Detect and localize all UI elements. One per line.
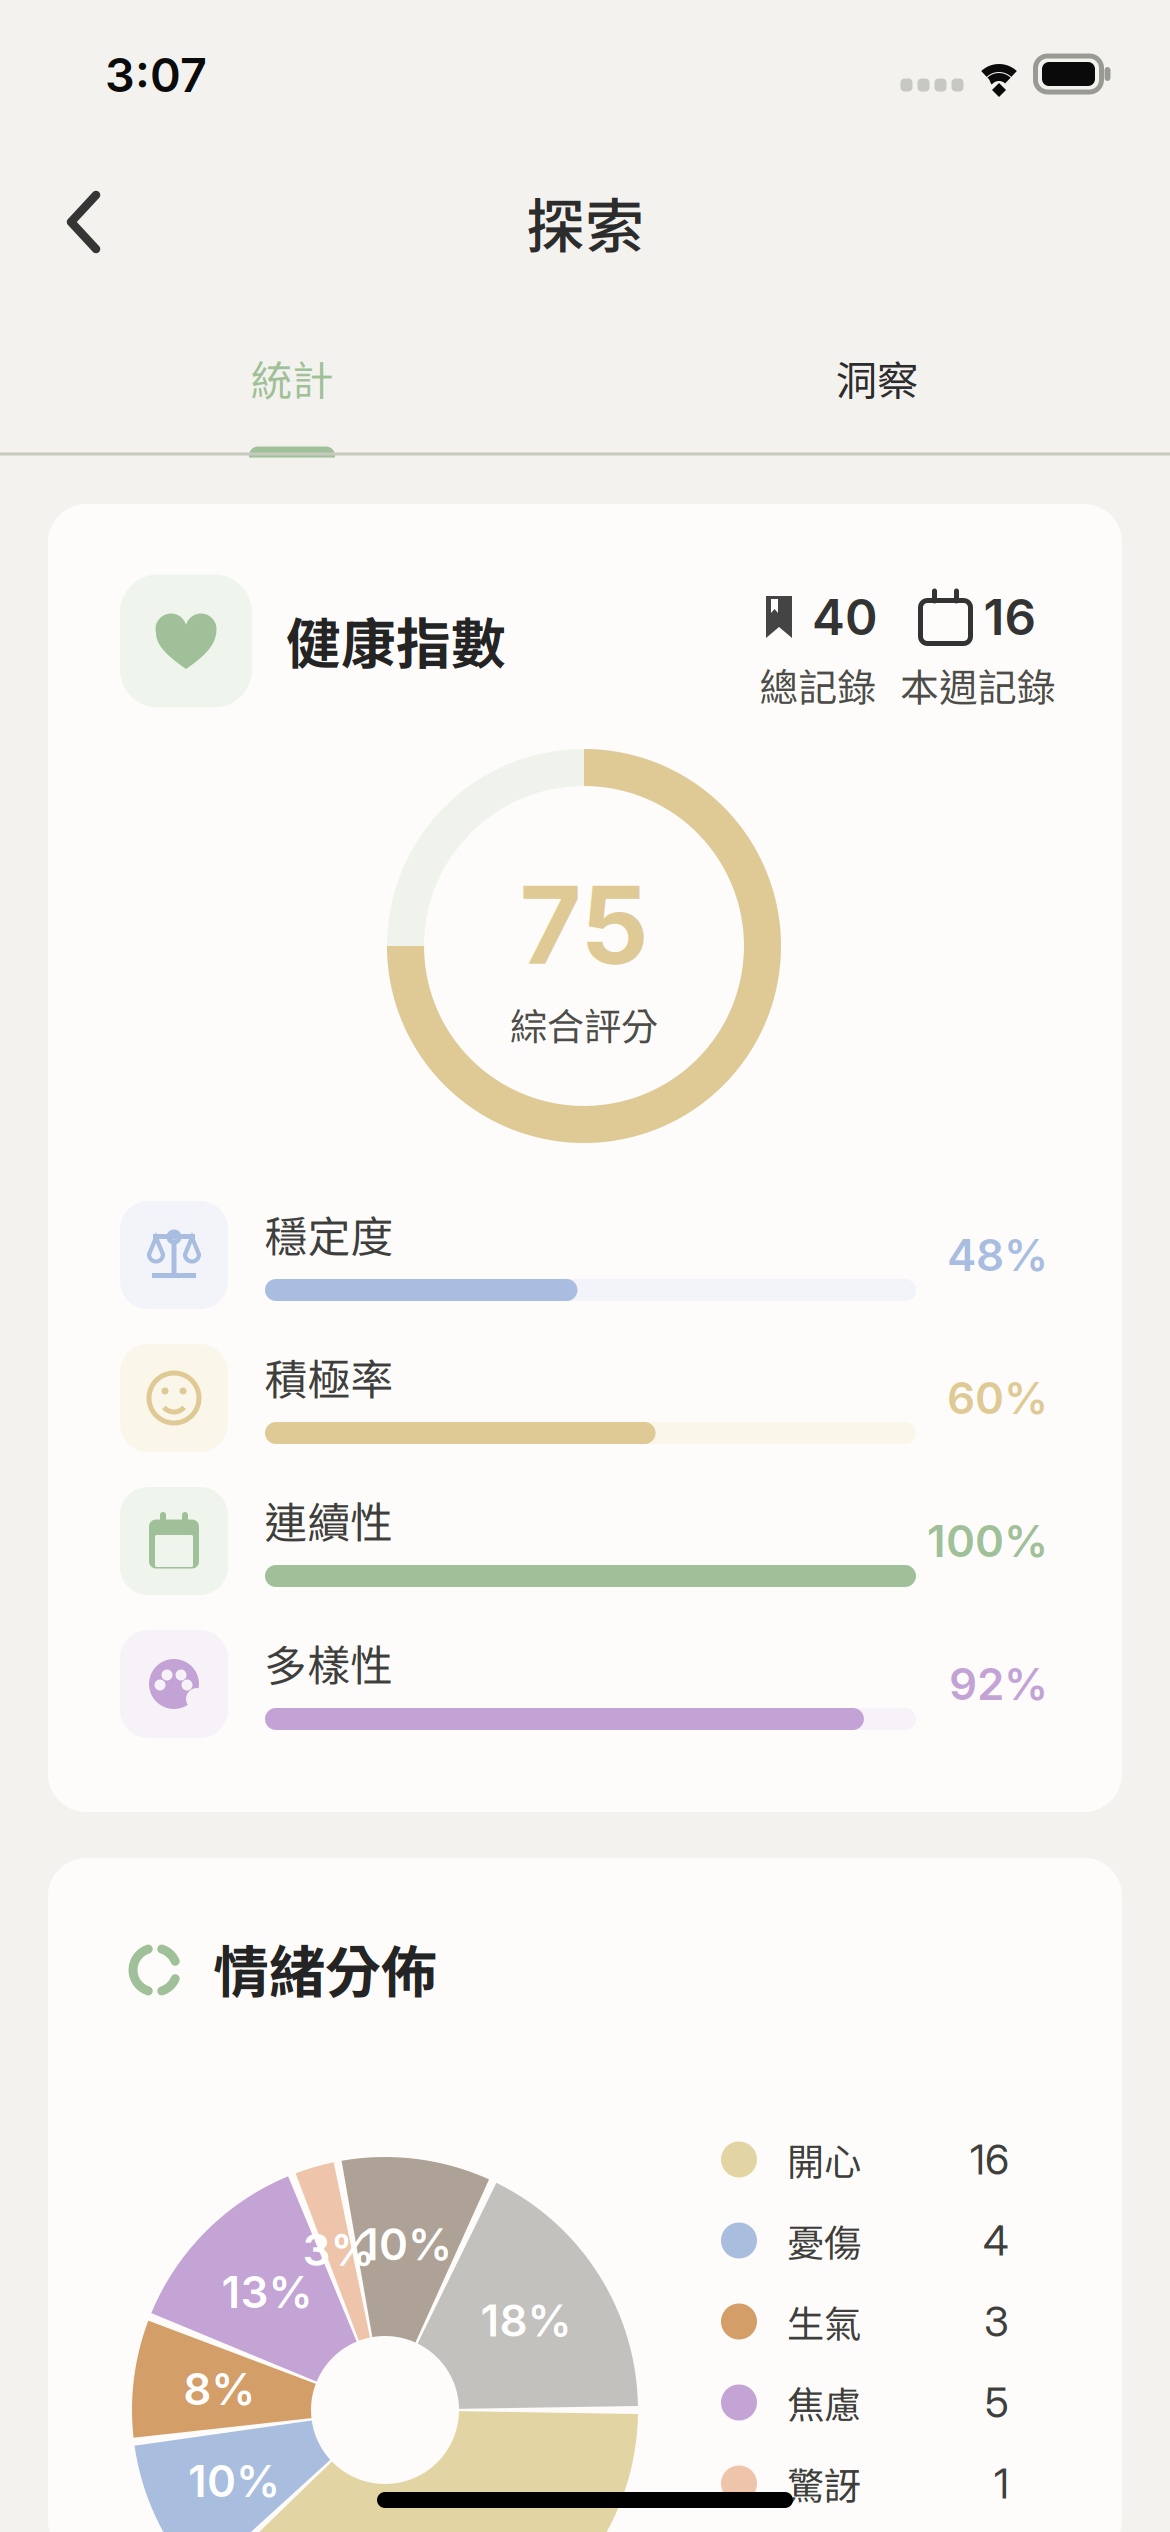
staticText: 100% xyxy=(927,1514,1048,1568)
staticText: 48% xyxy=(947,1228,1048,1282)
staticText: 總記錄 xyxy=(759,657,876,713)
staticText: 92% xyxy=(949,1657,1048,1711)
staticText: 開心 xyxy=(787,2132,861,2187)
staticText: 10% xyxy=(188,2454,280,2508)
staticText: 18% xyxy=(480,2294,571,2347)
staticText: 憂傷 xyxy=(787,2213,861,2268)
button[interactable]: 統計 xyxy=(102,323,482,433)
staticText: 多樣性 xyxy=(264,1632,393,1694)
staticText: 3:07 xyxy=(105,47,207,103)
staticText: 連續性 xyxy=(264,1489,393,1551)
staticText: 16 xyxy=(983,587,1036,647)
staticText: 情緒分佈 xyxy=(213,1927,437,2009)
staticText: 生氣 xyxy=(787,2294,861,2349)
staticText: 穩定度 xyxy=(264,1203,393,1265)
staticText: 8% xyxy=(183,2362,255,2416)
staticText: 探索 xyxy=(526,179,644,264)
staticText: 洞察 xyxy=(836,348,918,408)
staticText: 75 xyxy=(519,860,648,990)
staticText: 綜合評分 xyxy=(510,997,658,1051)
staticText: 16 xyxy=(970,2134,1009,2184)
staticText: 40 xyxy=(812,587,878,647)
staticText: 5 xyxy=(985,2377,1009,2427)
staticText: 3 xyxy=(984,2296,1009,2346)
staticText: 積極率 xyxy=(264,1346,393,1408)
button[interactable]: Back xyxy=(37,165,129,279)
staticText: 1 xyxy=(994,2458,1009,2508)
staticText: 10% xyxy=(360,2218,452,2271)
staticText: 健康指數 xyxy=(286,600,506,680)
staticText: 焦慮 xyxy=(787,2375,861,2430)
staticText: 3% xyxy=(302,2223,374,2276)
staticText: 本週記錄 xyxy=(900,657,1056,713)
staticText: 統計 xyxy=(251,348,333,408)
staticText: 驚訝 xyxy=(787,2456,861,2511)
button[interactable]: 洞察 xyxy=(687,323,1067,433)
staticText: 4 xyxy=(983,2215,1009,2265)
staticText: 60% xyxy=(947,1371,1048,1425)
staticText: 13% xyxy=(221,2265,312,2318)
